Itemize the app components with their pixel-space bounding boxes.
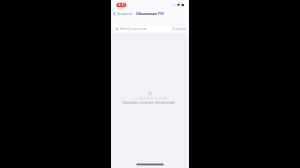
staticText: Проверка наличия обновлений... (122, 101, 177, 104)
button[interactable]: Отмена (171, 25, 187, 32)
staticText: Отмена (173, 27, 187, 31)
staticText: Обновление ПО (136, 12, 164, 16)
staticText: Основное (117, 12, 133, 16)
staticText: 9:41 (118, 3, 124, 7)
staticText: Проверка наличия обновлений (133, 97, 167, 100)
staticText: Автообновления (120, 27, 147, 31)
button[interactable]: Основное (111, 11, 133, 17)
